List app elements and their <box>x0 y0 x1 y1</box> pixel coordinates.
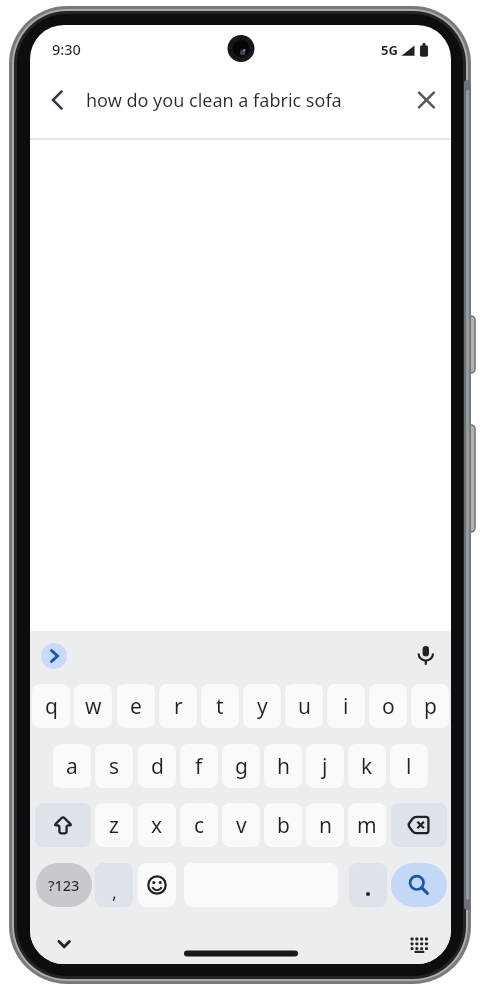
button[interactable]: g <box>222 744 260 788</box>
staticText: n <box>319 811 332 840</box>
staticText: q <box>45 692 58 721</box>
button[interactable] <box>41 643 67 669</box>
staticText: s <box>109 752 120 781</box>
staticText: d <box>151 752 164 781</box>
button[interactable]: k <box>348 744 386 788</box>
button[interactable]: x <box>138 803 176 847</box>
staticText: ?123 <box>48 875 80 895</box>
staticText: a <box>66 752 78 781</box>
staticText: o <box>382 692 395 721</box>
button[interactable] <box>138 863 176 907</box>
button[interactable]: r <box>159 684 197 728</box>
button[interactable]: n <box>306 803 344 847</box>
staticText: g <box>235 752 248 781</box>
button[interactable]: q <box>32 684 70 728</box>
staticText: m <box>357 811 377 840</box>
button[interactable] <box>175 946 306 961</box>
staticText: v <box>236 811 247 840</box>
button[interactable]: v <box>222 803 260 847</box>
button[interactable] <box>418 85 448 115</box>
button[interactable] <box>44 85 76 115</box>
staticText: e <box>130 692 142 721</box>
staticText: 9:30 <box>52 39 81 59</box>
button[interactable]: b <box>264 803 302 847</box>
button[interactable]: t <box>201 684 239 728</box>
button[interactable]: o <box>369 684 407 728</box>
button[interactable]: p <box>411 684 449 728</box>
staticText: c <box>194 811 205 840</box>
button[interactable] <box>391 803 447 847</box>
staticText: i <box>343 692 349 721</box>
button[interactable]: s <box>95 744 133 788</box>
button[interactable]: , <box>95 863 133 907</box>
staticText: 5G <box>381 41 398 59</box>
staticText: , <box>112 880 117 905</box>
button[interactable]: m <box>348 803 386 847</box>
button[interactable] <box>35 803 91 847</box>
staticText: k <box>361 752 373 781</box>
button[interactable] <box>52 934 77 954</box>
staticText: t <box>216 692 224 721</box>
button[interactable] <box>412 637 440 671</box>
staticText: w <box>85 692 102 721</box>
staticText: f <box>195 752 203 781</box>
button[interactable]: y <box>243 684 281 728</box>
button[interactable]: d <box>138 744 176 788</box>
button[interactable]: f <box>180 744 218 788</box>
staticText: y <box>257 692 268 721</box>
staticText: j <box>322 752 328 781</box>
staticText: how do you clean a fabric sofa <box>86 88 342 113</box>
button[interactable]: e <box>117 684 155 728</box>
button[interactable] <box>349 863 387 907</box>
button[interactable]: h <box>264 744 302 788</box>
button[interactable]: u <box>285 684 323 728</box>
button[interactable]: w <box>74 684 112 728</box>
staticText: u <box>298 692 311 721</box>
staticText: b <box>277 811 290 840</box>
staticText: r <box>174 692 183 721</box>
button[interactable]: j <box>306 744 344 788</box>
button[interactable]: z <box>95 803 133 847</box>
button[interactable]: i <box>327 684 365 728</box>
staticText: l <box>406 752 412 781</box>
staticText: p <box>424 692 437 721</box>
button[interactable]: a <box>53 744 91 788</box>
staticText: x <box>151 811 163 840</box>
staticText: z <box>109 811 119 840</box>
button[interactable]: ?123 <box>36 863 92 907</box>
button[interactable] <box>82 83 412 117</box>
button[interactable] <box>407 933 431 955</box>
button[interactable]: c <box>180 803 218 847</box>
button[interactable]: l <box>390 744 428 788</box>
staticText: h <box>277 752 290 781</box>
button[interactable] <box>391 863 447 907</box>
